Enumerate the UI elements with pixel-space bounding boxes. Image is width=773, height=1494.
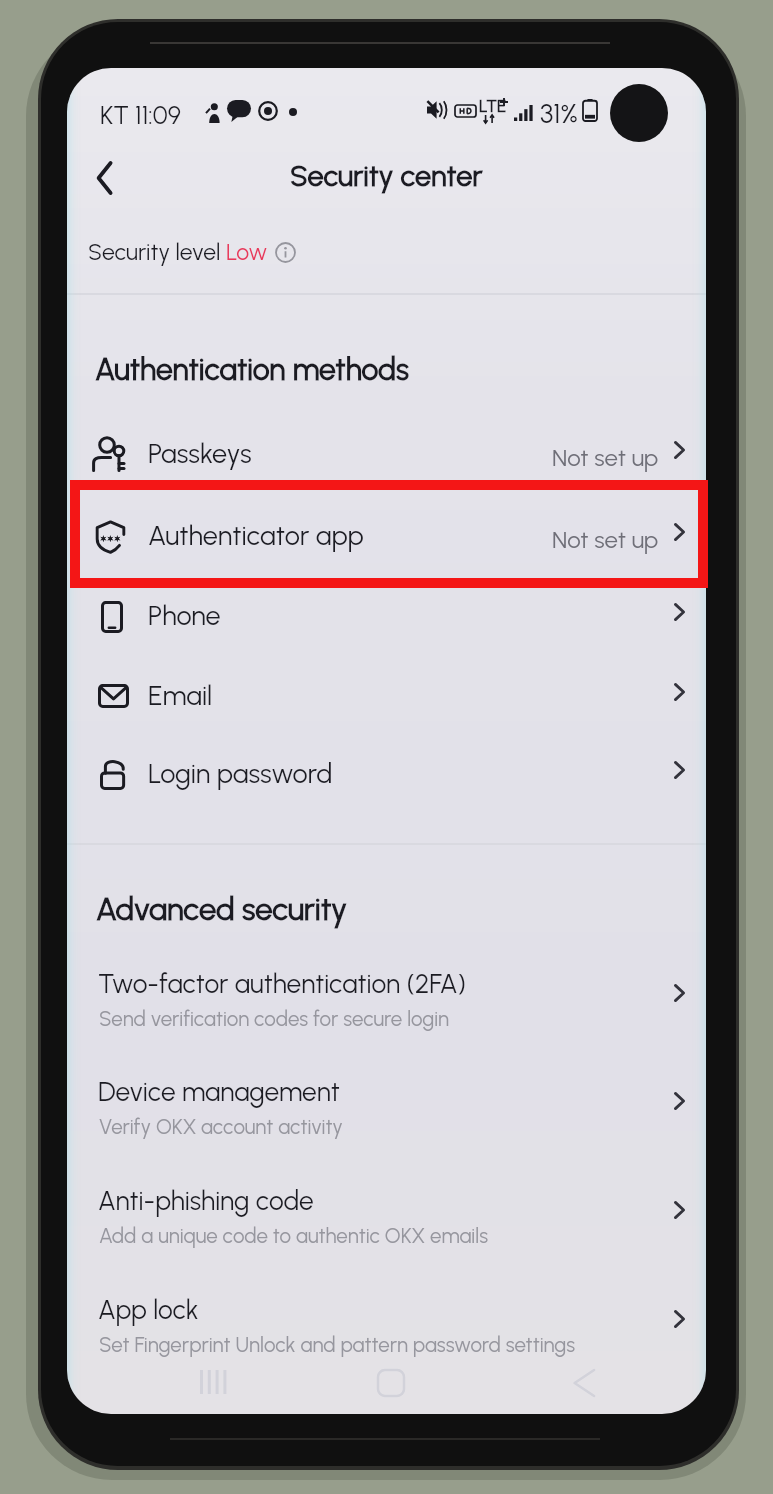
staticText: Phone: [148, 599, 221, 631]
staticText: Add a unique code to authentic OKX email…: [99, 1224, 488, 1249]
button[interactable]: Passkeys: [67, 413, 706, 491]
button[interactable]: Phone: [67, 576, 706, 654]
staticText: Login password: [148, 757, 333, 789]
button[interactable]: Device management: [67, 1076, 706, 1176]
button[interactable]: Two-factor authentication (2FA): [67, 968, 706, 1068]
staticText: Authenticator app: [148, 519, 364, 551]
staticText: Send verification codes for secure login: [99, 1007, 450, 1032]
staticText: App lock: [98, 1294, 199, 1326]
staticText: KT 11:09: [100, 100, 181, 130]
staticText: Security center: [290, 158, 483, 193]
staticText: Two-factor authentication (2FA): [98, 968, 466, 1000]
button[interactable]: Login password: [67, 734, 706, 812]
staticText: Low: [226, 238, 268, 266]
button[interactable]: App lock: [67, 1294, 706, 1394]
staticText: Anti-phishing code: [98, 1185, 314, 1217]
button[interactable]: Anti-phishing code: [67, 1185, 706, 1285]
staticText: Email: [148, 679, 213, 711]
button[interactable]: Authenticator app: [67, 496, 706, 574]
staticText: Set Fingerprint Unlock and pattern passw…: [99, 1333, 576, 1358]
staticText: Not set up: [552, 443, 659, 472]
button[interactable]: Email: [67, 655, 706, 733]
staticText: Not set up: [552, 525, 659, 554]
staticText: LTE: [479, 96, 507, 116]
staticText: 31%: [540, 97, 578, 129]
button[interactable]: Back: [75, 148, 135, 208]
staticText: Device management: [98, 1076, 340, 1108]
staticText: Advanced security: [96, 891, 348, 928]
staticText: Authentication methods: [95, 351, 409, 387]
staticText: Verify OKX account activity: [99, 1115, 343, 1140]
staticText: Passkeys: [148, 437, 252, 469]
staticText: Security level: [88, 238, 226, 266]
